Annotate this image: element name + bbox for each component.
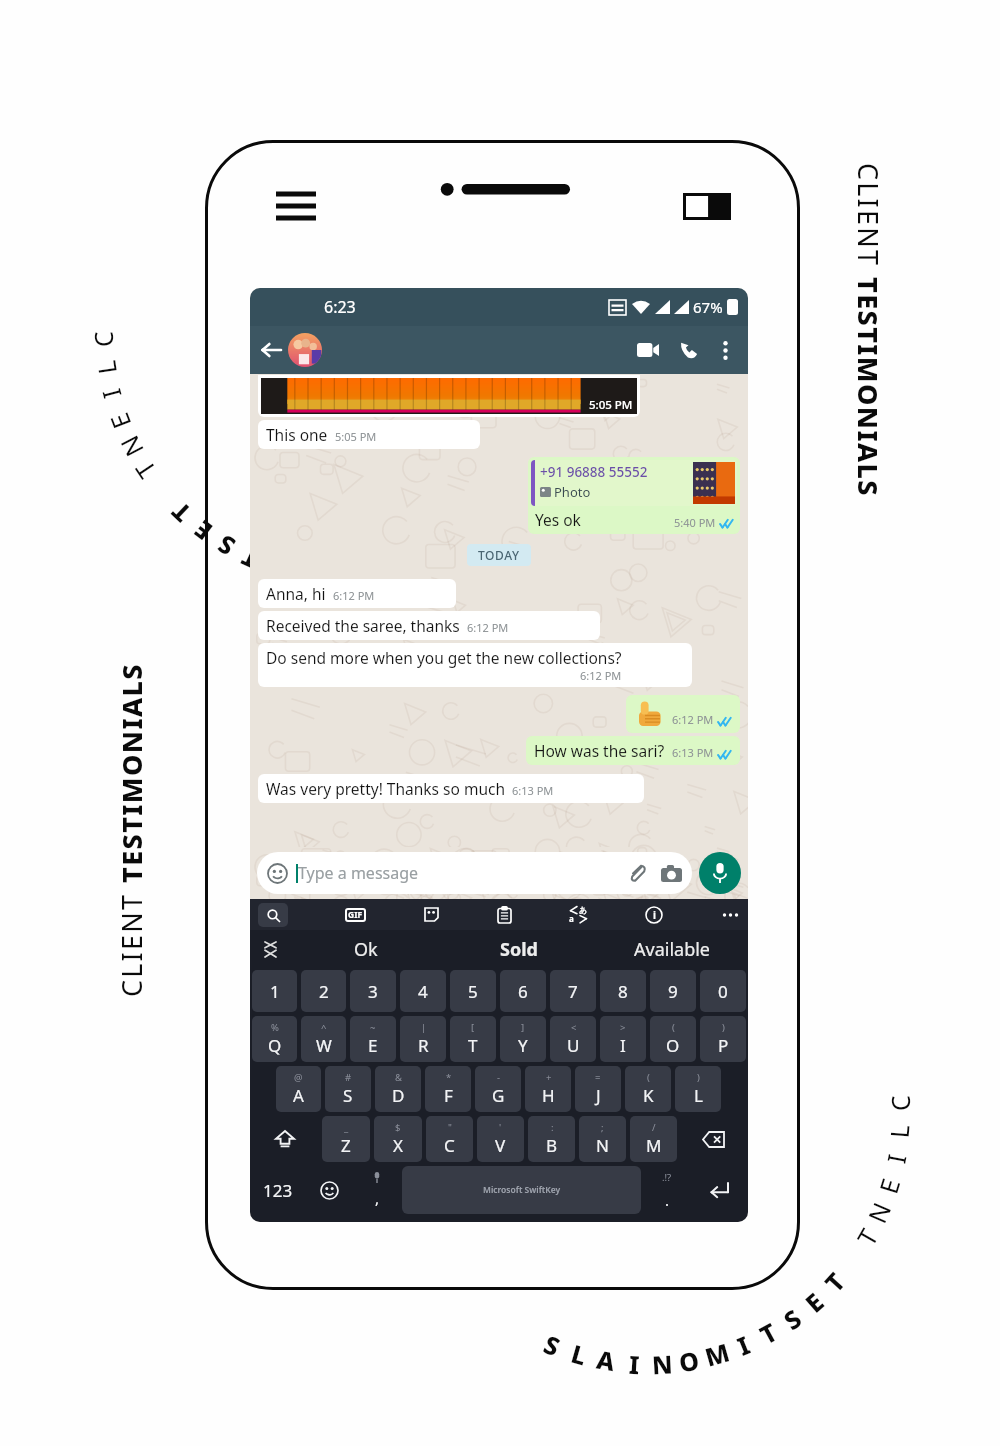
staticText: H (542, 1084, 555, 1107)
button[interactable]: Available (595, 930, 748, 968)
staticText: N (596, 1134, 609, 1157)
button[interactable]: Sold (442, 930, 595, 968)
button[interactable]: Anna, hi (258, 579, 456, 608)
button[interactable]: ~ (350, 1016, 396, 1062)
button[interactable]: " (426, 1116, 473, 1162)
staticText: I (266, 551, 287, 587)
button[interactable]: 5 (450, 970, 496, 1012)
staticText: G (492, 1084, 505, 1107)
button[interactable]: Menu (276, 190, 316, 224)
staticText: a (569, 913, 574, 924)
button[interactable]: Info (645, 906, 663, 924)
button[interactable]: % (252, 1016, 297, 1062)
staticText: O (676, 1343, 702, 1379)
button[interactable]: Was very pretty! Thanks so much (258, 774, 644, 803)
button[interactable]: [ (450, 1016, 496, 1062)
button[interactable]: , (355, 1166, 398, 1214)
button[interactable]: Space (402, 1166, 641, 1214)
button[interactable]: Clipboard (497, 906, 512, 924)
staticText: T (468, 1034, 478, 1057)
staticText: # (345, 1071, 352, 1084)
staticText: 6:13 PM (512, 783, 554, 798)
button[interactable]: 5:05 PM (258, 375, 640, 417)
staticText: I (628, 1347, 641, 1381)
button[interactable]: ) (700, 1016, 746, 1062)
button[interactable]: 0 (700, 970, 746, 1012)
button[interactable]: 7 (550, 970, 596, 1012)
button[interactable]: ) (675, 1066, 721, 1112)
staticText: A (594, 1342, 618, 1378)
button[interactable]: Type a message (257, 852, 692, 894)
button[interactable]: Voice call (672, 333, 706, 367)
button[interactable]: _ (322, 1116, 370, 1162)
button[interactable] (308, 1166, 351, 1214)
button[interactable]: ^ (301, 1016, 346, 1062)
staticText: Was very pretty! Thanks so much (266, 778, 505, 799)
button[interactable]: ' (477, 1116, 524, 1162)
staticText: TODAY (478, 547, 520, 563)
button[interactable]: Back (258, 337, 284, 363)
button[interactable]: > (600, 1016, 646, 1062)
button[interactable]: Received the saree, thanks (258, 611, 600, 640)
button[interactable]: 8 (600, 970, 646, 1012)
button[interactable]: 1 (252, 970, 297, 1012)
button[interactable]: GIF (345, 908, 366, 922)
button[interactable]: : (528, 1116, 575, 1162)
button[interactable]: - (475, 1066, 521, 1112)
staticText: < (571, 1021, 577, 1034)
button[interactable]: + (525, 1066, 571, 1112)
button[interactable]: Do send more when you get the new collec… (258, 643, 692, 687)
button[interactable]: Translate (569, 905, 588, 924)
staticText: T (236, 540, 263, 577)
staticText: 4 (418, 980, 428, 1003)
button[interactable]: ( (650, 1016, 696, 1062)
staticText: 6 (518, 980, 528, 1003)
button[interactable]: Contact photo (288, 333, 322, 367)
button[interactable]: How was the sari? (526, 736, 740, 765)
button[interactable]: & (375, 1066, 421, 1112)
button[interactable]: Collapse (250, 930, 290, 968)
staticText: E (871, 1174, 907, 1198)
staticText: E (368, 1034, 378, 1057)
button[interactable]: | (400, 1016, 446, 1062)
button[interactable]: Stickers (423, 906, 440, 923)
staticText: L (694, 1084, 703, 1107)
button[interactable] (681, 1116, 746, 1162)
button[interactable]: 2 (301, 970, 346, 1012)
staticText: 1 (270, 980, 280, 1003)
button[interactable] (252, 1116, 318, 1162)
staticText: Available (634, 937, 710, 962)
button[interactable]: Voice message (699, 852, 741, 894)
staticText: N (651, 1346, 674, 1381)
button[interactable] (692, 1166, 746, 1214)
button[interactable]: * (425, 1066, 471, 1112)
button[interactable]: +91 96888 55552 (528, 457, 740, 534)
button[interactable]: Video call (630, 332, 666, 368)
staticText: Z (341, 1134, 351, 1157)
button[interactable]: / (630, 1116, 677, 1162)
button[interactable]: = (575, 1066, 621, 1112)
staticText: = (595, 1071, 601, 1084)
button[interactable]: 4 (400, 970, 446, 1012)
button[interactable]: 3 (350, 970, 396, 1012)
button[interactable]: 6:12 PM (626, 695, 740, 733)
button[interactable]: This one (258, 420, 480, 449)
staticText: あ (579, 905, 588, 915)
button[interactable]: More (720, 905, 740, 925)
button[interactable]: ; (579, 1116, 626, 1162)
button[interactable]: 123 (252, 1166, 304, 1214)
button[interactable]: More options (710, 335, 740, 365)
button[interactable]: @ (276, 1066, 321, 1112)
button[interactable]: .!? (645, 1166, 688, 1214)
button[interactable]: 9 (650, 970, 696, 1012)
staticText: F (444, 1084, 453, 1107)
button[interactable]: Ok (290, 930, 442, 968)
staticText: 6:12 PM (672, 712, 714, 727)
button[interactable]: < (550, 1016, 596, 1062)
button[interactable]: Search (258, 903, 288, 927)
button[interactable]: $ (374, 1116, 422, 1162)
button[interactable]: 6 (500, 970, 546, 1012)
button[interactable]: ( (625, 1066, 671, 1112)
button[interactable]: # (325, 1066, 371, 1112)
button[interactable]: ] (500, 1016, 546, 1062)
